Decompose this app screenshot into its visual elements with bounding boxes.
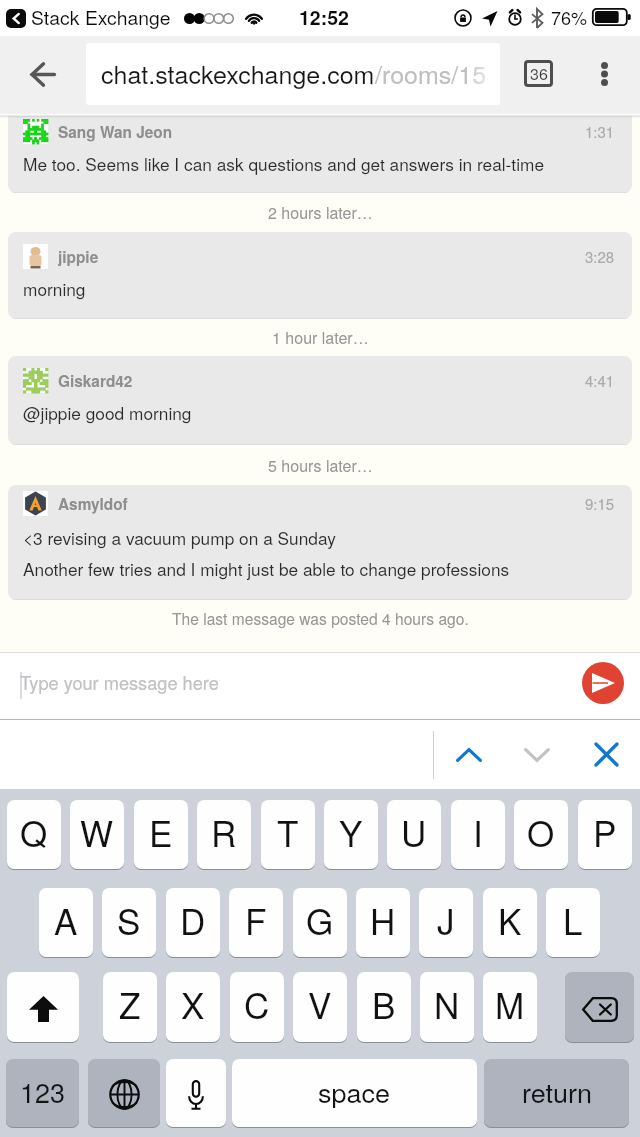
button[interactable]: Backspace: [565, 972, 634, 1042]
button[interactable]: More options: [580, 50, 628, 98]
staticText: Stack Exchange: [31, 3, 171, 31]
staticText: jippie: [58, 246, 99, 268]
button[interactable]: J: [419, 888, 473, 957]
staticText: E: [149, 807, 173, 857]
staticText: return: [522, 1072, 592, 1111]
button[interactable]: Back to Stack Exchange: [6, 9, 26, 28]
button[interactable]: Close keyboard: [581, 720, 631, 789]
button[interactable]: V: [293, 972, 347, 1042]
button[interactable]: Change keyboard language: [88, 1059, 160, 1127]
staticText: 9:15: [585, 493, 615, 514]
button[interactable]: G: [293, 888, 347, 957]
staticText: B: [372, 979, 396, 1029]
staticText: H: [370, 895, 396, 945]
button[interactable]: P: [578, 800, 632, 869]
button[interactable]: N: [420, 972, 474, 1042]
staticText: Asmyldof: [58, 493, 128, 515]
button[interactable]: 123: [6, 1059, 79, 1127]
staticText: T: [277, 807, 299, 857]
staticText: 12:52: [299, 3, 349, 31]
button[interactable]: Asmyldof: [8, 485, 632, 600]
button[interactable]: Type your message here: [20, 669, 219, 695]
staticText: 1 hour later…: [272, 326, 369, 349]
button[interactable]: O: [514, 800, 568, 869]
staticText: 4:41: [585, 370, 615, 391]
staticText: U: [401, 807, 427, 857]
staticText: K: [498, 895, 522, 945]
staticText: Me too. Seems like I can ask questions a…: [23, 151, 545, 176]
staticText: X: [181, 979, 205, 1029]
button[interactable]: T: [261, 800, 315, 869]
staticText: 36: [530, 62, 548, 85]
button[interactable]: E: [134, 800, 188, 869]
button[interactable]: return: [484, 1059, 629, 1127]
button[interactable]: H: [356, 888, 410, 957]
button[interactable]: R: [197, 800, 251, 869]
button[interactable]: D: [166, 888, 220, 957]
button[interactable]: F: [229, 888, 283, 957]
button[interactable]: Shift: [7, 972, 79, 1042]
staticText: W: [80, 807, 114, 857]
staticText: L: [563, 895, 583, 945]
button[interactable]: space: [232, 1059, 477, 1127]
staticText: /rooms/15: [375, 55, 487, 91]
button[interactable]: X: [166, 972, 220, 1042]
button[interactable]: jippie: [8, 232, 632, 319]
button[interactable]: B: [357, 972, 411, 1042]
staticText: V: [308, 979, 332, 1029]
staticText: G: [306, 895, 334, 945]
button[interactable]: K: [483, 888, 537, 957]
staticText: 3:28: [585, 246, 615, 267]
staticText: Q: [20, 807, 48, 857]
staticText: Z: [119, 979, 141, 1029]
staticText: morning: [23, 276, 86, 301]
button[interactable]: M: [483, 972, 537, 1042]
staticText: 5 hours later…: [268, 454, 373, 477]
button[interactable]: I: [451, 800, 505, 869]
button[interactable]: Back: [18, 51, 68, 97]
staticText: <3 revising a vacuum pump on a Sunday: [23, 525, 336, 550]
staticText: 1:31: [585, 121, 615, 142]
button[interactable]: Dictation: [166, 1059, 226, 1127]
button[interactable]: Q: [7, 800, 61, 869]
staticText: P: [593, 807, 617, 857]
button[interactable]: C: [230, 972, 284, 1042]
button[interactable]: Giskard42: [8, 356, 632, 445]
button[interactable]: chat.stackexchange.com: [86, 43, 500, 105]
button[interactable]: Previous field: [444, 720, 494, 789]
staticText: A: [54, 895, 78, 945]
staticText: @jippie good morning: [23, 400, 192, 425]
button[interactable]: Tabs: 36: [512, 47, 564, 99]
button[interactable]: L: [546, 888, 600, 957]
button[interactable]: Next field: [512, 720, 562, 789]
staticText: J: [437, 895, 455, 945]
staticText: Giskard42: [58, 370, 133, 392]
staticText: 76%: [551, 4, 588, 30]
button[interactable]: Y: [324, 800, 378, 869]
button[interactable]: Z: [103, 972, 157, 1042]
staticText: chat.stackexchange.com: [101, 55, 375, 91]
button[interactable]: Sang Wan Jeon: [8, 116, 632, 193]
staticText: Another few tries and I might just be ab…: [23, 556, 510, 581]
staticText: 123: [20, 1072, 66, 1111]
staticText: Sang Wan Jeon: [58, 121, 173, 143]
button[interactable]: Send: [582, 662, 624, 704]
staticText: F: [245, 895, 267, 945]
staticText: space: [318, 1072, 391, 1111]
staticText: D: [180, 895, 206, 945]
staticText: Y: [339, 807, 363, 857]
staticText: R: [211, 807, 237, 857]
staticText: O: [527, 807, 555, 857]
staticText: M: [495, 979, 525, 1029]
staticText: I: [473, 807, 483, 857]
staticText: S: [117, 895, 141, 945]
staticText: C: [244, 979, 270, 1029]
staticText: 2 hours later…: [268, 201, 373, 224]
button[interactable]: S: [102, 888, 156, 957]
button[interactable]: A: [39, 888, 93, 957]
staticText: N: [434, 979, 460, 1029]
button[interactable]: W: [70, 800, 124, 869]
button[interactable]: U: [387, 800, 441, 869]
staticText: The last message was posted 4 hours ago.: [172, 607, 469, 629]
